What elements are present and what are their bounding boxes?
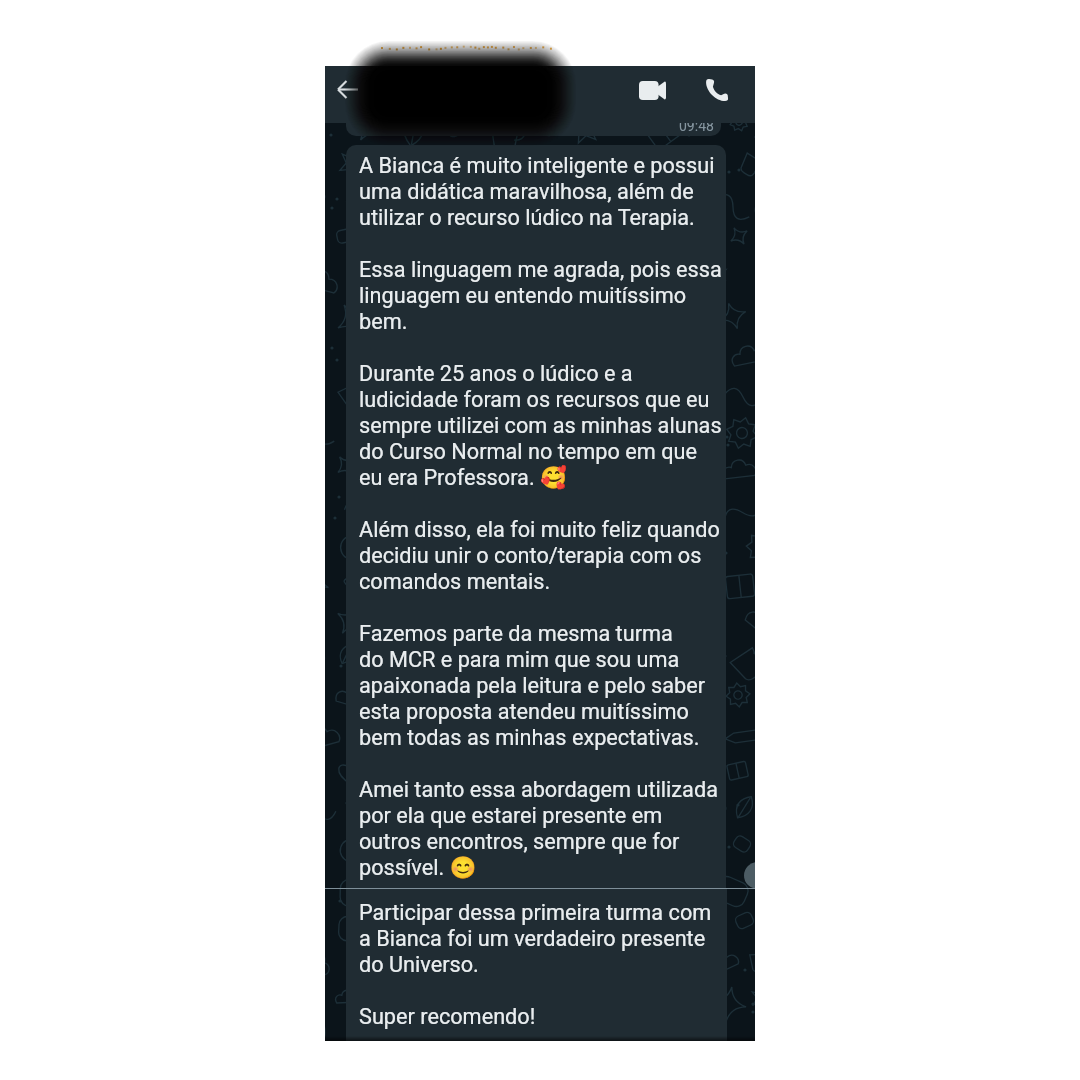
button[interactable]: Voice call [693,66,740,114]
button[interactable]: Video call [628,66,677,114]
button[interactable]: Scroll to bottom [744,862,755,889]
staticText: Participar dessa primeira turma com a Bi… [359,900,712,1030]
staticText: 09:48 [679,118,714,134]
button[interactable]: Contact name [370,66,620,123]
staticText: A Bianca é muito inteligente e possui um… [359,153,722,881]
button[interactable]: Participar dessa primeira turma com a Bi… [346,888,727,1041]
button[interactable]: A Bianca é muito inteligente e possui um… [346,145,726,888]
button[interactable]: Back [327,66,368,112]
